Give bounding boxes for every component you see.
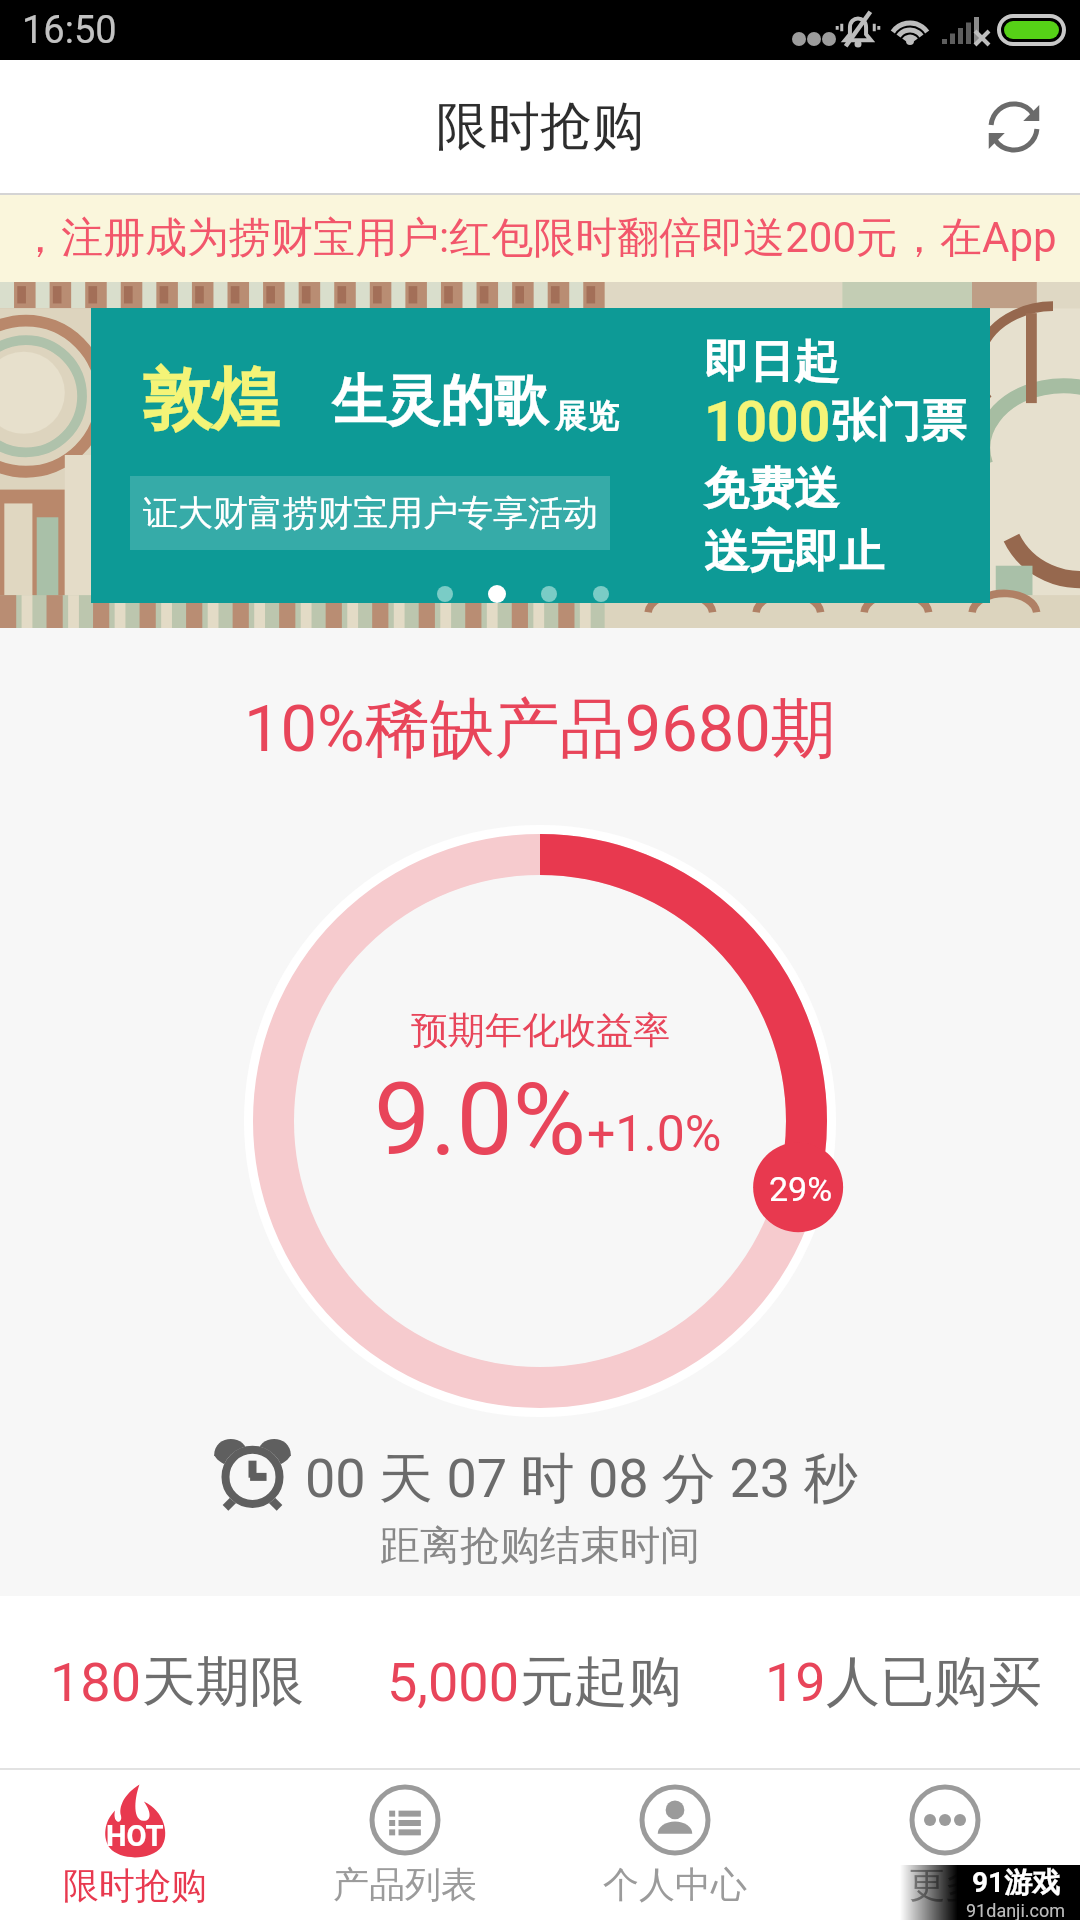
staticText: 元起购 — [520, 1648, 682, 1716]
staticText: 即日起 — [704, 334, 839, 391]
staticText: ，注册成为捞财宝用户:红包限时翻倍即送200元，在App — [19, 212, 1057, 265]
button[interactable]: Refresh — [970, 83, 1058, 171]
staticText: +1.0% — [587, 1105, 722, 1164]
staticText: 敦煌 — [143, 358, 279, 444]
button[interactable]: Page 3 — [539, 584, 559, 604]
button[interactable]: Page 1 — [435, 584, 455, 604]
button[interactable]: 产品列表 — [270, 1770, 540, 1920]
staticText: 生灵的歌 — [332, 367, 548, 435]
staticText: 1000 — [704, 390, 831, 454]
staticText: 张门票 — [831, 393, 966, 450]
staticText: 限时抢购 — [436, 94, 644, 160]
staticText: 展览 — [555, 396, 619, 436]
staticText: 91游戏 — [972, 1865, 1061, 1900]
button[interactable]: ，注册成为捞财宝用户:红包限时翻倍即送200元，在App — [0, 195, 1080, 282]
staticText: 180 — [50, 1651, 142, 1714]
staticText: 天期限 — [142, 1648, 304, 1716]
staticText: 距离抢购结束时间 — [380, 1520, 700, 1570]
staticText: 00 天 07 时 08 分 23 秒 — [305, 1445, 858, 1513]
staticText: 更多 — [909, 1862, 981, 1907]
staticText: 限时抢购 — [63, 1863, 207, 1908]
staticText: 证大财富捞财宝用户专享活动 — [143, 491, 598, 535]
staticText: 91danji.com — [966, 1900, 1066, 1920]
staticText: HOT — [106, 1819, 164, 1853]
staticText: 人已购买 — [826, 1648, 1042, 1716]
staticText: 送完即止 — [704, 524, 884, 581]
button[interactable]: 个人中心 — [540, 1770, 810, 1920]
staticText: 免费送 — [704, 461, 839, 518]
button[interactable]: Page 4 — [591, 584, 611, 604]
staticText: 9.0% — [374, 1061, 587, 1178]
button[interactable]: 敦煌生灵的歌展览活动海报 — [0, 282, 1080, 628]
button[interactable]: 更多 — [810, 1770, 1080, 1920]
staticText: 29% — [769, 1169, 833, 1209]
staticText: 19 — [765, 1651, 826, 1714]
staticText: 预期年化收益率 — [411, 1007, 670, 1054]
staticText: 产品列表 — [333, 1862, 477, 1907]
staticText: 5,000 — [387, 1651, 520, 1714]
staticText: 个人中心 — [603, 1862, 747, 1907]
staticText: 16:50 — [22, 8, 117, 53]
button[interactable]: HOT — [0, 1770, 270, 1920]
staticText: 10%稀缺产品9680期 — [244, 688, 836, 770]
button[interactable]: Page 2 — [487, 584, 507, 604]
